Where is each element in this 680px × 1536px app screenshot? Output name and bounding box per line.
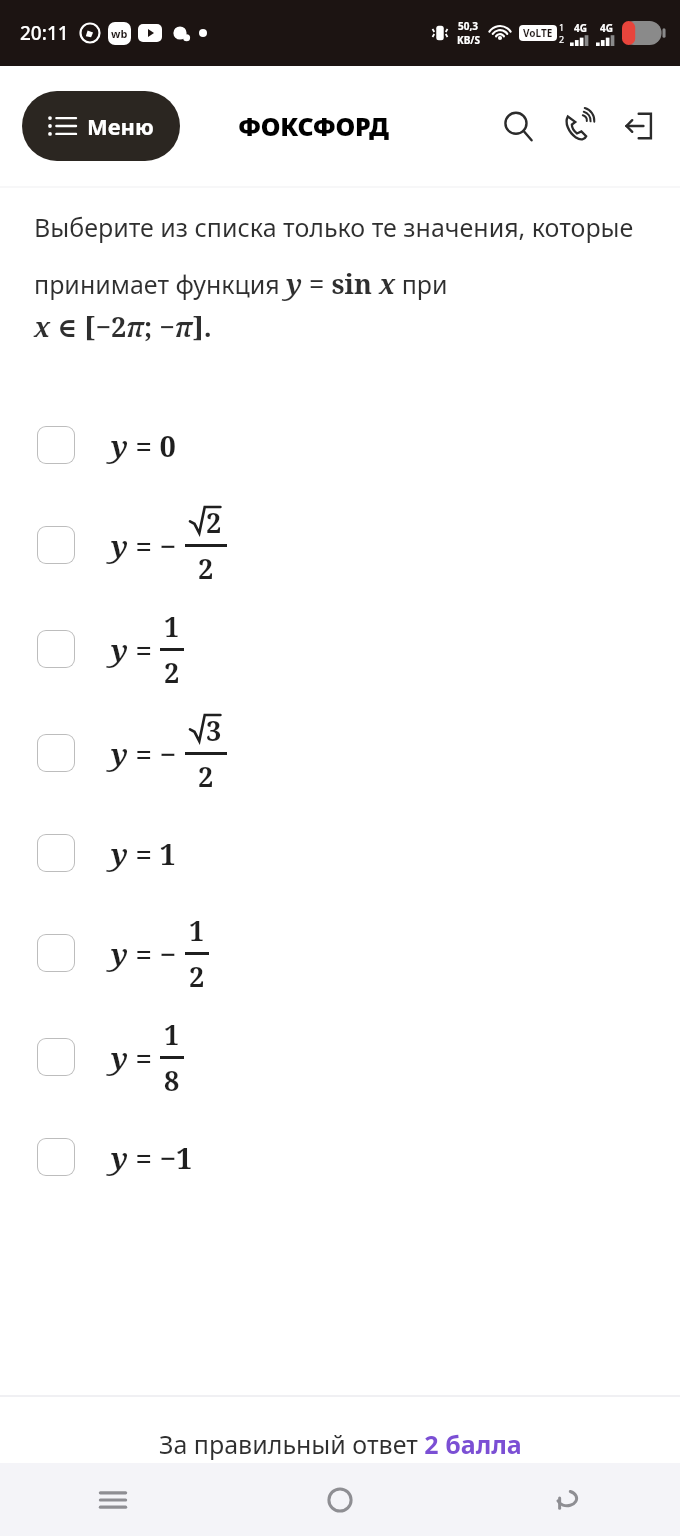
button[interactable]: Позвонить bbox=[554, 102, 602, 150]
staticText: Выберите из списка только те значения, к… bbox=[34, 210, 646, 302]
staticText: 1 bbox=[189, 912, 205, 949]
staticText: y = bbox=[111, 630, 152, 669]
staticText: wb bbox=[111, 26, 128, 41]
staticText: 1 bbox=[559, 21, 565, 33]
staticText: За правильный ответ 2 балла bbox=[159, 1427, 522, 1461]
staticText: 20:11 bbox=[20, 20, 69, 46]
staticText: 2 bbox=[164, 654, 180, 691]
staticText: 4G bbox=[600, 21, 613, 35]
staticText: y = bbox=[111, 1038, 152, 1077]
staticText: y = − bbox=[111, 734, 177, 773]
button[interactable]: Поиск bbox=[494, 102, 542, 150]
staticText: y = − bbox=[111, 526, 177, 565]
staticText: 3 bbox=[206, 712, 222, 749]
button[interactable]: y = 0 bbox=[0, 397, 680, 493]
staticText: 1 bbox=[164, 1016, 180, 1053]
staticText: 2 bbox=[198, 550, 214, 587]
staticText: 8 bbox=[164, 1062, 180, 1099]
staticText: 2 bbox=[206, 504, 222, 541]
staticText: 50,3 bbox=[458, 19, 479, 33]
staticText: 1 bbox=[164, 608, 180, 645]
staticText: ФОКСФОРД bbox=[238, 109, 389, 143]
button[interactable]: y = − bbox=[0, 701, 680, 805]
staticText: 2 bbox=[559, 33, 565, 45]
button[interactable]: Недавние bbox=[0, 1463, 226, 1536]
staticText: y = − bbox=[111, 934, 177, 973]
button[interactable]: y = bbox=[0, 1005, 680, 1109]
staticText: x ∈ [−2π; −π]. bbox=[34, 308, 212, 345]
staticText: KB/S bbox=[457, 33, 480, 47]
button[interactable]: y = bbox=[0, 597, 680, 701]
button[interactable]: y = − bbox=[0, 901, 680, 1005]
staticText: 2 bbox=[189, 958, 205, 995]
staticText: Меню bbox=[87, 111, 154, 141]
staticText: y = 1 bbox=[111, 834, 176, 873]
staticText: 4G bbox=[574, 21, 587, 35]
staticText: y = 0 bbox=[111, 426, 176, 465]
button[interactable]: Главный экран bbox=[226, 1463, 453, 1536]
button[interactable]: Выход bbox=[614, 102, 662, 150]
staticText: 2 bbox=[198, 758, 214, 795]
button[interactable]: y = − bbox=[0, 493, 680, 597]
button[interactable]: Меню bbox=[22, 91, 180, 161]
staticText: y = −1 bbox=[111, 1138, 193, 1177]
staticText: VoLTE bbox=[523, 26, 553, 40]
button[interactable]: Назад bbox=[453, 1463, 680, 1536]
button[interactable]: y = 1 bbox=[0, 805, 680, 901]
button[interactable]: y = −1 bbox=[0, 1109, 680, 1205]
